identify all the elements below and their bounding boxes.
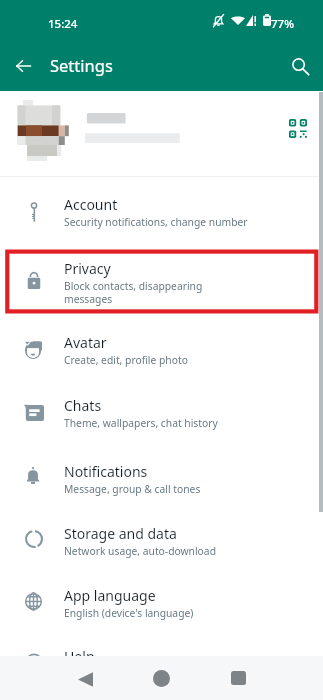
staticText: Help center, contact us, privacy policy bbox=[64, 667, 245, 681]
staticText: Privacy bbox=[64, 259, 111, 278]
button[interactable]: QR code bbox=[0, 91, 323, 176]
button[interactable]: Account bbox=[0, 189, 323, 235]
button[interactable]: App language bbox=[0, 580, 323, 626]
staticText: Help bbox=[64, 647, 95, 666]
button[interactable]: Back bbox=[0, 43, 46, 89]
button[interactable]: Notifications bbox=[0, 456, 323, 502]
button[interactable]: Back bbox=[63, 657, 107, 700]
staticText: 77% bbox=[271, 16, 294, 32]
button[interactable]: Search bbox=[277, 43, 323, 89]
button[interactable]: Avatar bbox=[0, 327, 323, 373]
staticText: App language bbox=[64, 586, 156, 605]
button[interactable]: Chats bbox=[0, 390, 323, 436]
staticText: Avatar bbox=[64, 333, 107, 352]
staticText: Security notifications, change number bbox=[64, 215, 248, 229]
staticText: Chats bbox=[64, 396, 102, 415]
staticText: Network usage, auto-download bbox=[64, 544, 216, 558]
staticText: Message, group & call tones bbox=[64, 482, 201, 496]
staticText: Account bbox=[64, 195, 118, 214]
staticText: Settings bbox=[50, 54, 113, 76]
button[interactable]: Home bbox=[139, 656, 183, 700]
button[interactable]: Help bbox=[0, 641, 323, 687]
staticText: Notifications bbox=[64, 462, 148, 481]
button[interactable]: Storage and data bbox=[0, 518, 323, 564]
staticText: Create, edit, profile photo bbox=[64, 353, 188, 367]
button[interactable]: Privacy bbox=[0, 253, 323, 311]
staticText: 15:24 bbox=[48, 16, 78, 32]
staticText: Storage and data bbox=[64, 524, 177, 543]
staticText: Theme, wallpapers, chat history bbox=[64, 416, 218, 430]
staticText: Block contacts, disappearing messages bbox=[64, 279, 203, 306]
button[interactable]: QR code bbox=[280, 110, 316, 146]
staticText: English (device's language) bbox=[64, 606, 194, 620]
button[interactable]: Recents bbox=[216, 656, 260, 700]
